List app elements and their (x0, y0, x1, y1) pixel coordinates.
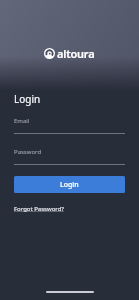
staticText: Forgot Password? (14, 205, 64, 213)
staticText: altoura (57, 46, 95, 61)
button[interactable]: Login (14, 176, 125, 193)
staticText: Login (60, 180, 79, 190)
button[interactable]: Email (14, 117, 125, 134)
button[interactable]: altoura (42, 45, 97, 62)
staticText: Login (14, 92, 41, 106)
staticText: Password (14, 148, 42, 156)
button[interactable]: Password (14, 148, 125, 165)
button[interactable]: Forgot Password? (14, 205, 64, 213)
staticText: Email (14, 117, 30, 125)
